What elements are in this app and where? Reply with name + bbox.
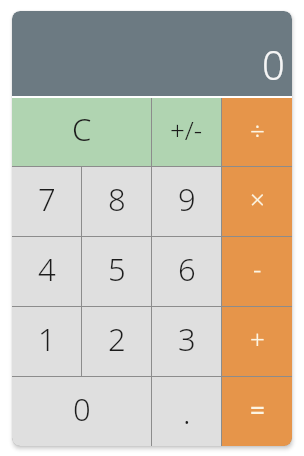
button[interactable]: - (222, 237, 292, 306)
button[interactable]: 3 (152, 307, 221, 376)
button[interactable]: 5 (82, 237, 151, 306)
button[interactable]: 4 (12, 237, 81, 306)
button[interactable]: 9 (152, 167, 221, 236)
button[interactable]: 7 (12, 167, 81, 236)
staticText: = (250, 391, 265, 426)
staticText: ÷ (250, 112, 265, 147)
staticText: 9 (178, 178, 196, 220)
button[interactable]: 0 (12, 11, 292, 96)
button[interactable]: . (152, 377, 221, 446)
button[interactable]: × (222, 167, 292, 236)
staticText: 1 (38, 318, 56, 360)
staticText: 0 (73, 388, 91, 430)
button[interactable]: +/- (152, 98, 221, 166)
staticText: × (250, 181, 265, 216)
button[interactable]: 6 (152, 237, 221, 306)
button[interactable]: ÷ (222, 98, 292, 166)
staticText: + (250, 321, 265, 356)
button[interactable]: = (222, 377, 292, 446)
staticText: 4 (38, 248, 56, 290)
staticText: 7 (38, 178, 56, 220)
button[interactable]: 0 (12, 377, 151, 446)
staticText: C (72, 108, 92, 150)
button[interactable]: C (12, 98, 151, 166)
staticText: 8 (108, 178, 126, 220)
button[interactable]: + (222, 307, 292, 376)
staticText: +/- (170, 112, 203, 147)
staticText: 6 (178, 248, 196, 290)
staticText: 5 (108, 248, 126, 290)
staticText: 2 (108, 318, 126, 360)
button[interactable]: 8 (82, 167, 151, 236)
staticText: 3 (178, 318, 196, 360)
staticText: . (183, 391, 191, 433)
button[interactable]: 2 (82, 307, 151, 376)
staticText: - (253, 251, 262, 286)
button[interactable]: 1 (12, 307, 81, 376)
staticText: 0 (262, 37, 285, 91)
